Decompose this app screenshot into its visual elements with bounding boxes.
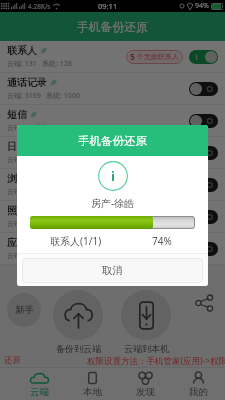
button[interactable]: 联系人 [0,41,225,73]
button[interactable]: 照片 [0,201,225,233]
staticText: 联系人 [7,44,37,57]
staticText: 新手 [15,304,34,316]
button[interactable]: 应用 [0,233,225,265]
button[interactable]: Switch off [189,178,218,192]
button[interactable]: Switch off [189,210,218,224]
staticText: 云端: 0 [7,251,29,261]
button[interactable]: Switch off [189,146,218,160]
staticText: 手机备份还原 [77,20,148,35]
button[interactable]: Switch on [189,50,218,64]
button[interactable]: 云端 [12,368,66,400]
button[interactable]: Switch off [189,242,218,256]
staticText: 云端: 131 [7,59,37,69]
staticText: 照片 [7,204,27,217]
staticText: 94% [195,1,209,11]
staticText: 联系人(1/1) [50,234,102,248]
button[interactable]: 发现 [119,368,172,400]
button[interactable]: 新手 [7,293,41,327]
staticText: 云端: 0 [7,187,29,197]
staticText: i [111,167,115,185]
staticText: 房产-徐皓 [91,196,135,210]
staticText: 通话记录 [7,76,47,89]
button[interactable]: 日程 [0,137,225,169]
staticText: 云端: 3169 [7,91,41,101]
staticText: 系统: 0 [34,155,56,165]
staticText: 4.28K/s [28,2,51,11]
staticText: 手机备份还原 [78,134,147,148]
button[interactable]: 取消 [22,258,203,283]
staticText: 系统: 128 [42,59,72,69]
staticText: 取消 [102,264,123,277]
button[interactable]: Switch off [189,82,218,96]
staticText: 短信 [7,108,27,121]
button[interactable]: 通话记录 [0,73,225,105]
staticText: 系统: 1000 [46,91,80,101]
staticText: 发现 [136,386,155,398]
button[interactable]: 本地 [66,368,119,400]
button[interactable] [53,290,103,340]
staticText: 应用 [7,236,27,249]
staticText: 云端到本机 [124,343,169,354]
staticText: 备份到云端 [56,343,101,354]
staticText: 系统: 0 [34,123,56,133]
staticText: 云端: 0 [7,155,29,165]
staticText: 权限设置方法：手机管家(应用)->权限管 [87,355,225,367]
staticText: 个无效联系人 [135,52,179,62]
staticText: 74% [152,234,172,248]
button[interactable]: 我的 [172,368,225,400]
button[interactable]: Share [194,294,214,314]
button[interactable]: 短信 [0,105,225,137]
staticText: 云端: 0 [7,123,29,133]
staticText: 还原 [4,355,21,366]
staticText: 我的 [189,386,208,398]
staticText: 系统: 0 [34,251,56,261]
button[interactable]: Switch off [189,114,218,128]
button[interactable]: 浏览器 [0,169,225,201]
staticText: 09:11 [98,1,118,11]
staticText: 浏览器 [7,172,37,185]
button[interactable]: 5 [126,50,183,64]
staticText: 云端: 0 [7,219,29,229]
button[interactable] [121,290,171,340]
staticText: 5 [130,51,135,63]
staticText: 云端 [30,386,49,398]
staticText: 日程 [7,140,27,153]
staticText: 本地 [83,386,102,398]
staticText: 系统: 0 [34,219,56,229]
